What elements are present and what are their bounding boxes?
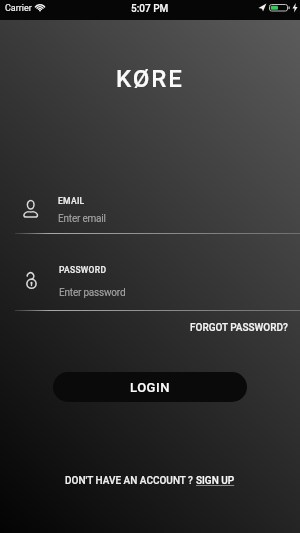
staticText: 5:07 PM xyxy=(131,3,169,15)
button[interactable] xyxy=(15,190,300,234)
button[interactable]: SIGN UP xyxy=(196,475,235,487)
button[interactable] xyxy=(15,262,300,311)
staticText: Enter password xyxy=(59,287,126,299)
staticText: PASSWORD xyxy=(59,265,107,275)
staticText: Carrier xyxy=(5,3,32,14)
staticText: Enter email xyxy=(58,213,106,225)
staticText: DON'T HAVE AN ACCOUNT ? xyxy=(65,475,196,487)
staticText: EMAIL xyxy=(58,196,85,206)
staticText: SIGN UP xyxy=(196,475,235,487)
button[interactable]: LOGIN xyxy=(53,372,247,402)
staticText: FORGOT PASSWORD? xyxy=(190,322,288,334)
button[interactable]: FORGOT PASSWORD? xyxy=(178,318,300,338)
staticText: LOGIN xyxy=(130,380,170,395)
staticText: KØRE xyxy=(116,65,184,93)
